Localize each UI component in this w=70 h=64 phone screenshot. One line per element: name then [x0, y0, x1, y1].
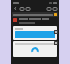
button[interactable] [13, 41, 57, 57]
button[interactable] [13, 26, 57, 40]
button[interactable]: Menu [19, 6, 24, 11]
button[interactable]: Camera [46, 6, 51, 11]
button[interactable]: Attachment [54, 41, 58, 45]
button[interactable] [11, 17, 59, 25]
button[interactable]: Pinned [12, 12, 58, 17]
button[interactable]: Back [13, 6, 18, 11]
button[interactable]: Call [52, 6, 57, 11]
button[interactable]: Add [25, 6, 30, 11]
button[interactable]: Pinned [54, 13, 57, 16]
button[interactable]: Attachment [54, 30, 58, 34]
